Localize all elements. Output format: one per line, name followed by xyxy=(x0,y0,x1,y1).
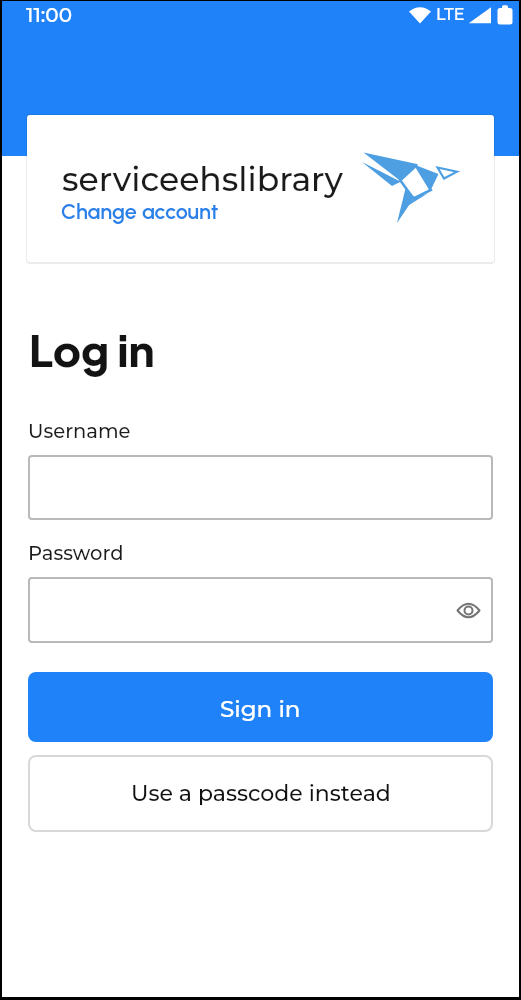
staticText: Password xyxy=(28,541,124,565)
button[interactable]: Change account xyxy=(61,199,219,225)
staticText: Username xyxy=(28,419,131,443)
staticText: Sign in xyxy=(220,695,301,723)
button[interactable]: Use a passcode instead xyxy=(28,755,493,832)
staticText: 11:00 xyxy=(26,3,73,27)
staticText: serviceehslibrary xyxy=(62,159,344,199)
button[interactable]: Sign in xyxy=(28,672,493,742)
button[interactable] xyxy=(28,577,493,643)
staticText: Log in xyxy=(29,322,155,377)
staticText: Use a passcode instead xyxy=(131,780,391,807)
staticText: LTE xyxy=(436,5,465,25)
button[interactable] xyxy=(28,455,493,520)
